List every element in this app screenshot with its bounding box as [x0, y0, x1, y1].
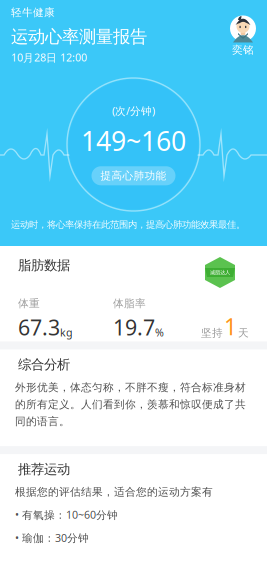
staticText: 有氧操：10~60分钟 [22, 508, 118, 522]
staticText: 奕铭 [232, 43, 254, 56]
staticText: 外形优美，体态匀称，不胖不瘦，符合标准身材的所有定义。人们看到你，羡慕和惊叹便成… [15, 381, 246, 428]
staticText: 1 [224, 311, 237, 341]
staticText: 19.7 [113, 313, 155, 341]
staticText: 10月28日 12:00 [11, 50, 87, 65]
staticText: 运动心率测量报告 [11, 26, 147, 47]
staticText: 推荐运动 [18, 461, 70, 477]
staticText: 脂肪数据 [18, 257, 70, 273]
staticText: 综合分析 [18, 356, 70, 373]
staticText: 减脂达人 [210, 269, 230, 276]
staticText: 坚持 [201, 326, 223, 339]
button[interactable]: 用户 奕铭 [230, 15, 256, 56]
staticText: 提高心肺功能 [100, 169, 166, 182]
staticText: • [15, 531, 19, 545]
staticText: 67.3 [18, 313, 60, 341]
staticText: % [155, 325, 164, 339]
staticText: 149~160 [81, 123, 186, 158]
staticText: 根据您的评估结果，适合您的运动方案有 [15, 485, 213, 499]
staticText: • [15, 508, 19, 522]
staticText: 轻牛健康 [11, 6, 55, 19]
staticText: 体重 [18, 297, 40, 310]
staticText: 运动时，将心率保持在此范围内，提高心肺功能效果最佳。 [11, 219, 245, 230]
staticText: (次/分钟) [112, 104, 155, 118]
staticText: 体脂率 [113, 297, 146, 310]
staticText: 瑜伽：30分钟 [22, 531, 89, 545]
staticText: 天 [238, 326, 249, 339]
staticText: kg [60, 325, 73, 339]
button[interactable]: 提高心肺功能 [91, 166, 175, 185]
